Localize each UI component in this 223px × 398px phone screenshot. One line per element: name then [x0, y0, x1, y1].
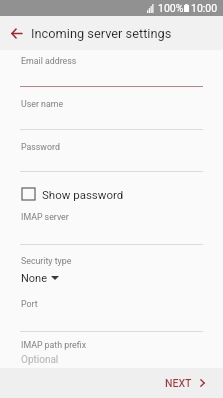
- staticText: Password: [21, 142, 60, 152]
- staticText: Security type: [21, 256, 72, 266]
- button[interactable]: Show password: [0, 186, 223, 202]
- staticText: 10:00: [191, 2, 218, 14]
- button[interactable]: None: [0, 272, 223, 284]
- staticText: Incoming server settings: [31, 26, 172, 41]
- staticText: None: [21, 272, 48, 284]
- staticText: IMAP server: [21, 212, 69, 222]
- button[interactable]: Navigate up: [3, 20, 29, 46]
- staticText: Optional: [21, 354, 59, 366]
- staticText: User name: [21, 99, 64, 109]
- staticText: IMAP path prefix: [21, 340, 86, 350]
- staticText: Show password: [42, 188, 124, 201]
- staticText: Port: [21, 299, 38, 309]
- staticText: NEXT: [165, 377, 192, 389]
- staticText: 100%: [158, 2, 184, 14]
- staticText: Email address: [21, 56, 77, 66]
- button[interactable]: NEXT: [149, 370, 223, 396]
